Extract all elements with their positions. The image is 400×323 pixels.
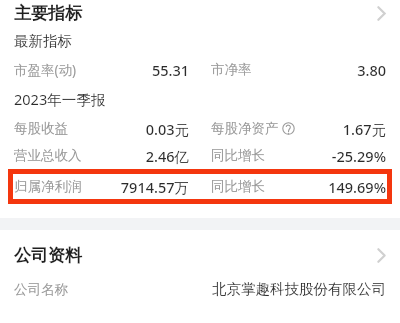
staticText: 公司名称: [14, 281, 68, 298]
button[interactable]: 公司资料: [0, 240, 400, 270]
staticText: 149.69%: [328, 177, 386, 197]
staticText: 0.03元: [145, 119, 189, 139]
staticText: 同比增长: [211, 178, 265, 195]
staticText: 最新指标: [14, 32, 72, 50]
staticText: 市盈率(动): [14, 61, 77, 79]
staticText: 同比增长: [211, 147, 265, 164]
staticText: 每股净资产: [211, 120, 279, 137]
staticText: 公司资料: [14, 245, 82, 266]
staticText: 2.46亿: [145, 146, 189, 166]
staticText: 3.80: [357, 60, 386, 80]
button[interactable]: 主要指标: [0, 0, 400, 24]
staticText: 2023年一季报: [14, 89, 106, 109]
staticText: 营业总收入: [14, 147, 82, 164]
staticText: 北京掌趣科技股份有限公司: [212, 280, 386, 298]
button[interactable]: 归属净利润: [8, 169, 392, 204]
staticText: 55.31: [151, 60, 189, 80]
other: 公司资料详情: [377, 248, 386, 263]
staticText: -25.29%: [331, 146, 386, 166]
staticText: 1.67元: [342, 119, 386, 139]
staticText: 主要指标: [14, 3, 82, 24]
staticText: 归属净利润: [14, 178, 82, 195]
staticText: 市净率: [211, 61, 252, 78]
other: 主要指标详情: [377, 6, 386, 21]
staticText: 每股收益: [14, 120, 68, 137]
staticText: 7914.57万: [120, 177, 189, 197]
